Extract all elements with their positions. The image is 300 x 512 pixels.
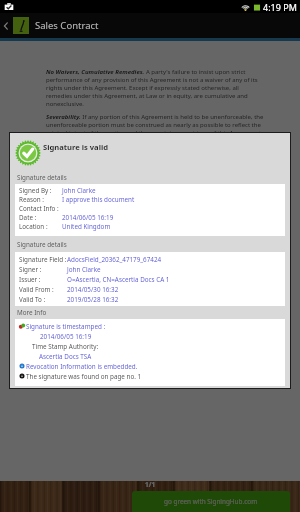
staticText: John Clarke xyxy=(62,186,96,195)
staticText: More Info xyxy=(17,308,47,317)
staticText: Time Stamp Authority: xyxy=(32,342,99,351)
staticText: John Clarke xyxy=(67,265,101,274)
staticText: Severability. If any portion of this Agr… xyxy=(46,113,266,145)
staticText: Valid To : xyxy=(19,295,46,304)
staticText: 2014/05/30 16:32 xyxy=(67,285,119,294)
staticText: Contact Info : xyxy=(19,204,59,213)
staticText: Signature details xyxy=(17,173,67,182)
button[interactable]: Back xyxy=(0,13,12,38)
staticText: Signature Field : xyxy=(19,255,67,264)
staticText: Date : xyxy=(19,213,37,222)
button[interactable]: Signature is valid xyxy=(10,133,290,388)
staticText: 2019/05/28 16:32 xyxy=(67,295,119,304)
staticText: 1/1 xyxy=(145,480,156,489)
staticText: go green with SigningHub.com xyxy=(164,497,258,506)
staticText: Sales Contract xyxy=(35,19,99,32)
button[interactable]: Signature xyxy=(13,17,29,34)
staticText: Valid From : xyxy=(19,285,54,294)
staticText: Revocation Information is embedded. xyxy=(26,362,138,371)
staticText: Reason : xyxy=(19,195,45,204)
staticText: 2014/06/05 16:19 xyxy=(40,332,92,341)
button[interactable]: go green with SigningHub.com xyxy=(132,491,290,512)
staticText: Signed By : xyxy=(19,186,52,195)
staticText: Issuer : xyxy=(19,275,41,284)
staticText: Signer : xyxy=(19,265,42,274)
staticText: United Kingdom xyxy=(62,222,111,231)
staticText: The signature was found on page no. 1 xyxy=(26,372,142,381)
staticText: Signature is valid xyxy=(43,142,108,152)
staticText: 4:19 PM xyxy=(263,1,297,13)
staticText: Ascertia Docs TSA xyxy=(39,352,92,361)
staticText: I approve this document xyxy=(62,195,135,204)
staticText: O=Ascertia, CN=Ascertia Docs CA 1 xyxy=(67,275,170,284)
staticText: No Waivers, Cumulative Remedies. A party… xyxy=(46,68,266,108)
staticText: Signature is timestamped : xyxy=(26,322,106,331)
staticText: AdocsField_20362_47179_67424 xyxy=(67,255,162,264)
staticText: Location : xyxy=(19,222,48,231)
staticText: 2014/06/05 16:19 xyxy=(62,213,114,222)
staticText: Signature details xyxy=(17,240,67,249)
